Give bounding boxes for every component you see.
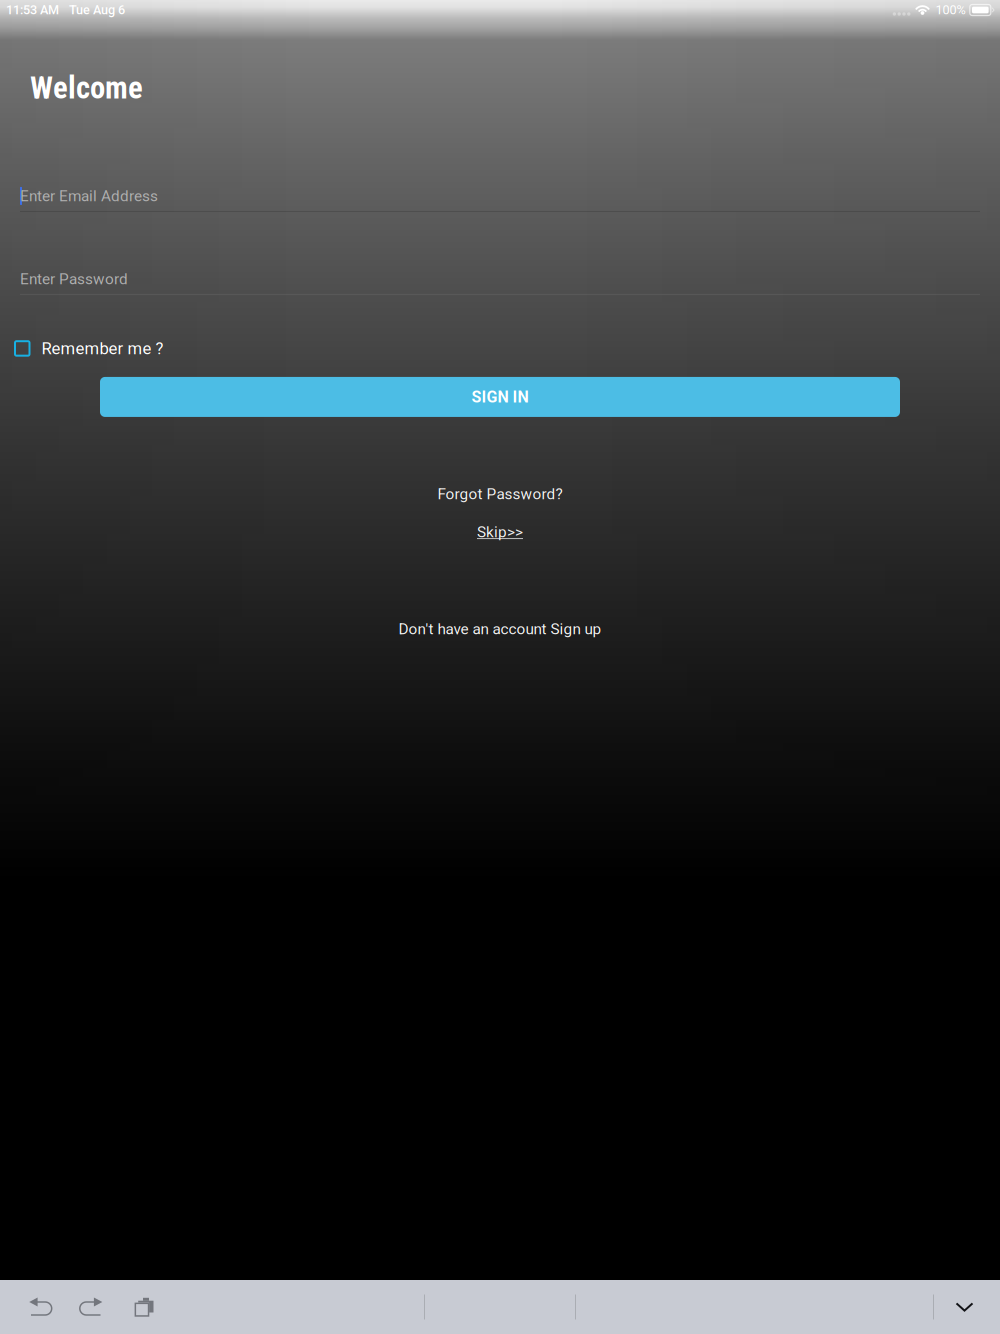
staticText: Welcome [30,70,143,106]
button[interactable]: Undo [0,1280,66,1334]
button[interactable]: Skip>> [0,523,1000,541]
button[interactable]: Forgot Password? [0,485,1000,503]
staticText: Enter Email Address [20,187,158,205]
button[interactable]: Paste [117,1280,170,1334]
staticText: Tue Aug 6 [69,3,125,17]
button[interactable]: Don't have an account Sign up [0,620,1000,638]
button[interactable]: Redo [66,1280,117,1334]
button[interactable]: Hide keyboard [934,1280,995,1334]
staticText: Forgot Password? [437,485,562,503]
staticText: Skip>> [477,523,523,541]
staticText: Enter Password [20,270,128,288]
staticText: 11:53 AM [6,3,59,17]
button[interactable]: SIGN IN [100,377,900,417]
staticText: SIGN IN [471,388,528,406]
staticText: Remember me ? [41,339,163,358]
button[interactable]: Remember me ? [0,338,1000,359]
staticText: Don't have an account Sign up [398,620,601,638]
staticText: 100% [935,3,965,17]
